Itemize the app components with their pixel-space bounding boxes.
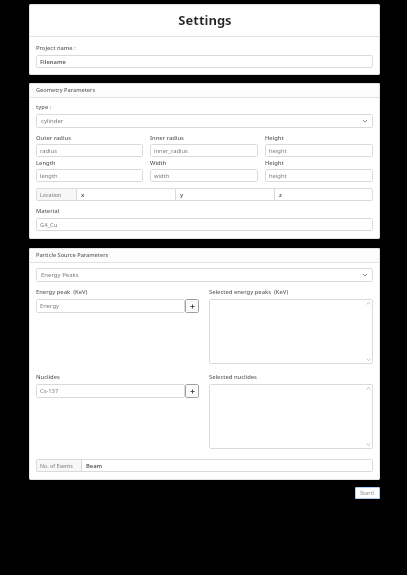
staticText: Settings — [178, 11, 232, 29]
staticText: Energy Peaks — [41, 271, 79, 279]
button[interactable]: Add energy peak — [185, 299, 199, 313]
staticText: Height — [265, 159, 373, 167]
button[interactable]: G4_Cu — [36, 218, 373, 231]
button[interactable]: Energy Peaks — [36, 268, 373, 282]
staticText: height — [269, 172, 287, 180]
staticText: Inner radius — [150, 134, 258, 142]
button[interactable]: length — [36, 169, 143, 182]
button[interactable]: inner_radius — [150, 144, 258, 157]
staticText: Particle Source Parameters — [36, 251, 109, 259]
staticText: Selected energy peaks (KeV) — [209, 288, 289, 296]
staticText: height — [269, 147, 287, 155]
button[interactable]: Start! — [355, 487, 380, 499]
button[interactable]: No. of Events — [36, 459, 373, 472]
staticText: radius — [40, 147, 57, 155]
staticText: Height — [265, 134, 373, 142]
button[interactable]: Energy — [36, 299, 185, 313]
staticText: Length — [36, 159, 143, 167]
staticText: inner_radius — [154, 147, 188, 155]
staticText: Filename — [40, 58, 66, 66]
staticText: Nuclides — [36, 373, 60, 381]
staticText: Material — [36, 207, 60, 215]
staticText: No. of Events — [40, 462, 73, 469]
button[interactable]: height — [265, 144, 373, 157]
staticText: width — [154, 172, 170, 180]
staticText: Geometry Parameters — [36, 86, 96, 94]
staticText: z — [279, 191, 282, 199]
button[interactable]: Selected energy peaks list — [209, 299, 373, 364]
staticText: Outer radius — [36, 134, 143, 142]
staticText: Start! — [360, 489, 375, 497]
staticText: Cs-137 — [40, 387, 59, 395]
staticText: x — [81, 191, 85, 199]
staticText: cylinder — [41, 117, 64, 125]
staticText: y — [180, 191, 184, 199]
staticText: type : — [36, 103, 52, 111]
button[interactable]: Selected nuclides list — [209, 384, 373, 449]
staticText: length — [40, 172, 58, 180]
staticText: G4_Cu — [40, 221, 58, 229]
button[interactable]: Add nuclide — [185, 384, 199, 398]
staticText: Project name : — [36, 44, 76, 52]
staticText: Energy peak (KeV) — [36, 288, 88, 296]
staticText: Beam — [86, 462, 103, 470]
staticText: Width — [150, 159, 258, 167]
button[interactable]: cylinder — [36, 114, 373, 128]
button[interactable]: width — [150, 169, 258, 182]
button[interactable]: radius — [36, 144, 143, 157]
staticText: Selected nuclides — [209, 373, 257, 381]
button[interactable]: Location — [36, 188, 373, 201]
button[interactable]: Cs-137 — [36, 384, 185, 398]
button[interactable]: height — [265, 169, 373, 182]
staticText: Location — [40, 191, 62, 198]
button[interactable]: Filename — [36, 55, 373, 68]
staticText: Energy — [40, 302, 59, 310]
